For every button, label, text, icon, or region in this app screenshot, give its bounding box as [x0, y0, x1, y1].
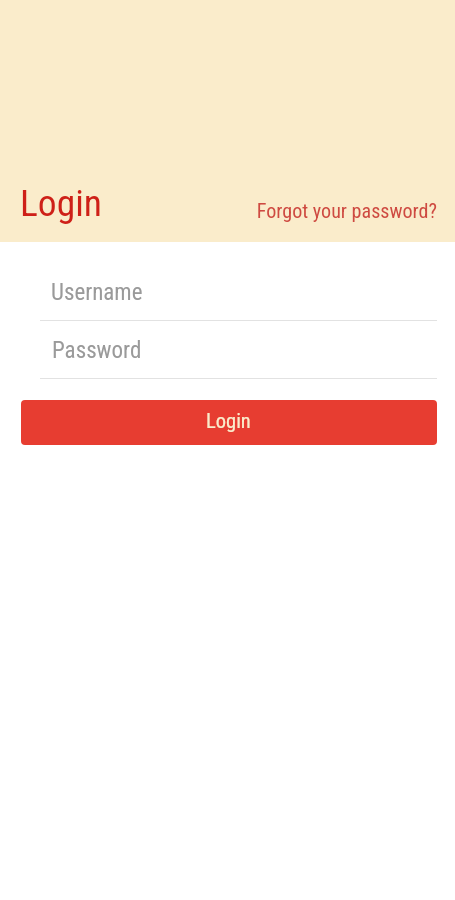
- staticText: Forgot your password?: [252, 199, 437, 223]
- staticText: Login: [20, 181, 102, 225]
- button[interactable]: Username: [40, 272, 437, 322]
- staticText: Password: [52, 337, 142, 364]
- staticText: Login: [206, 409, 251, 433]
- button[interactable]: Password: [40, 330, 437, 380]
- button[interactable]: Login: [21, 400, 437, 445]
- button[interactable]: Forgot your password?: [252, 196, 437, 226]
- staticText: Username: [51, 279, 143, 306]
